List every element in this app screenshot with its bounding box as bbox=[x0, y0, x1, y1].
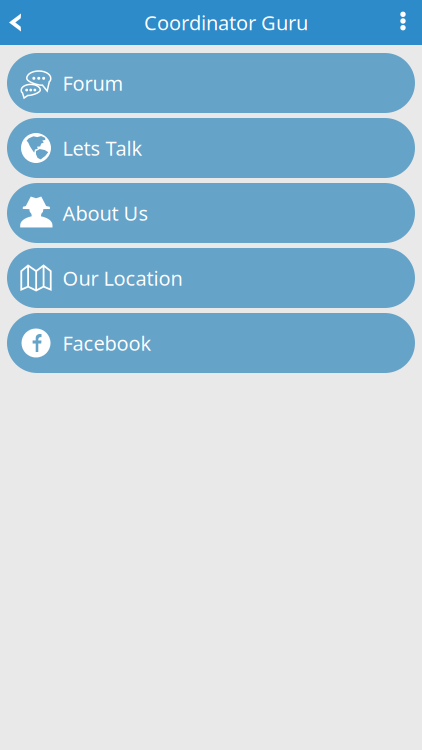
button[interactable]: Lets Talk bbox=[7, 118, 415, 178]
button[interactable]: More options bbox=[386, 0, 422, 45]
button[interactable]: About Us bbox=[7, 183, 415, 243]
staticText: Forum bbox=[62, 70, 123, 96]
button[interactable]: Our Location bbox=[7, 248, 415, 308]
staticText: Coordinator Guru bbox=[144, 9, 308, 36]
button[interactable]: Facebook bbox=[7, 313, 415, 373]
button[interactable]: Forum bbox=[7, 53, 415, 113]
staticText: Lets Talk bbox=[62, 135, 142, 161]
staticText: Facebook bbox=[62, 330, 151, 356]
button[interactable]: Back bbox=[0, 0, 30, 45]
staticText: Our Location bbox=[62, 265, 182, 291]
staticText: About Us bbox=[62, 200, 148, 226]
